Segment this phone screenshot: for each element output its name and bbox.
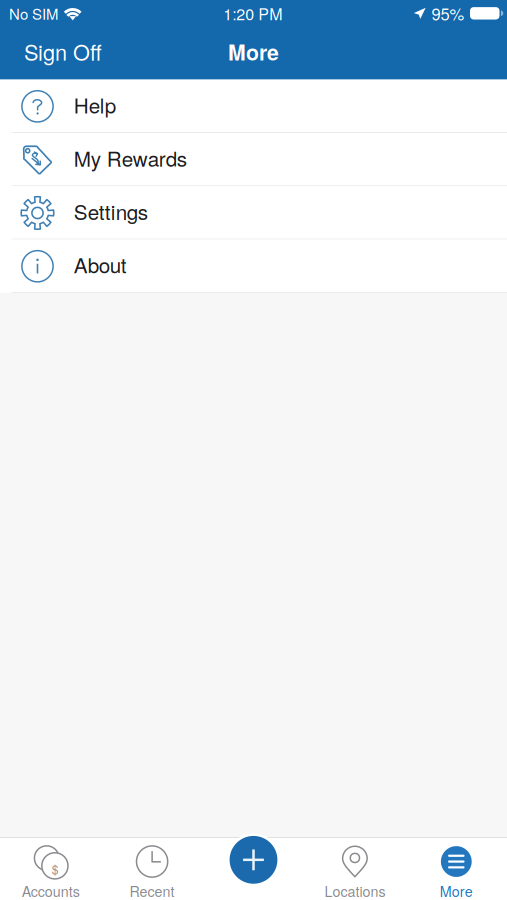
staticText: No SIM — [9, 3, 58, 24]
staticText: Recent — [130, 881, 175, 900]
button[interactable]: About — [0, 239, 507, 292]
staticText: Settings — [74, 196, 148, 226]
button[interactable]: More — [406, 838, 507, 900]
staticText: More — [440, 881, 473, 900]
button[interactable]: Help — [0, 80, 507, 132]
staticText: About — [74, 250, 127, 279]
staticText: 1:20 PM — [223, 2, 282, 25]
staticText: Accounts — [22, 881, 80, 900]
button[interactable]: Settings — [0, 186, 507, 239]
staticText: Help — [74, 90, 116, 119]
staticText: 95% — [431, 1, 464, 25]
button[interactable]: Locations — [304, 838, 406, 900]
staticText: $ — [52, 860, 59, 877]
button[interactable]: My Rewards — [0, 133, 507, 185]
staticText: Locations — [324, 881, 385, 900]
staticText: More — [228, 37, 279, 67]
button[interactable]: Sign Off — [0, 28, 114, 79]
button[interactable]: $ — [0, 838, 101, 900]
staticText: My Rewards — [74, 143, 187, 173]
staticText: Sign Off — [24, 36, 102, 67]
button[interactable]: Recent — [101, 838, 203, 900]
button[interactable]: Add — [225, 832, 281, 888]
